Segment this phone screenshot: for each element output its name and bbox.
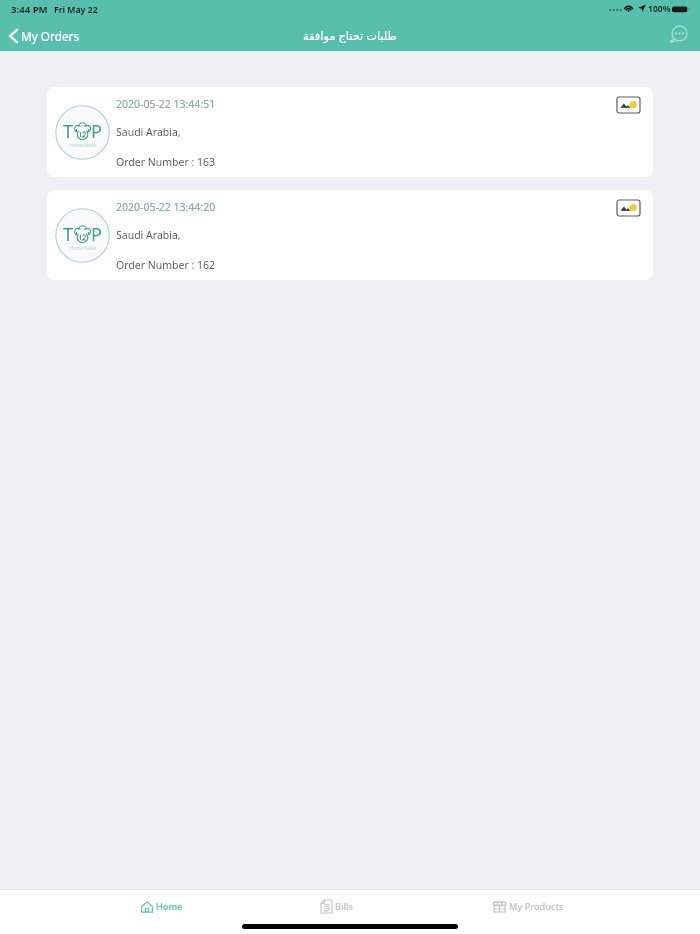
staticText: My Products xyxy=(509,900,564,913)
staticText: T xyxy=(63,119,74,144)
staticText: P xyxy=(91,119,102,144)
staticText: Order Number : 162 xyxy=(116,258,216,272)
button[interactable]: Home xyxy=(0,890,232,921)
button[interactable]: My Products xyxy=(464,890,700,921)
button[interactable]: T xyxy=(47,190,653,280)
staticText: Saudi Arabia, xyxy=(116,125,181,139)
staticText: T xyxy=(63,222,74,247)
staticText: Home Made xyxy=(70,245,96,251)
staticText: Saudi Arabia, xyxy=(116,228,181,242)
staticText: My Orders xyxy=(21,28,80,44)
button[interactable]: Bills xyxy=(232,890,464,921)
staticText: طلبات تحتاج موافقة xyxy=(303,28,397,44)
staticText: P xyxy=(91,222,102,247)
staticText: 2020-05-22 13:44:20 xyxy=(116,200,216,214)
button[interactable]: T xyxy=(47,87,653,177)
staticText: Home Made xyxy=(70,142,96,148)
staticText: 3:44 PM xyxy=(11,3,48,16)
staticText: Bills xyxy=(335,900,353,913)
staticText: Home xyxy=(156,900,183,913)
staticText: 100% xyxy=(648,3,671,15)
staticText: Fri May 22 xyxy=(54,4,98,16)
button[interactable]: Back to My Orders xyxy=(0,23,90,49)
staticText: Order Number : 163 xyxy=(116,155,216,169)
button[interactable]: Chat xyxy=(665,21,691,47)
staticText: 2020-05-22 13:44:51 xyxy=(116,97,216,111)
